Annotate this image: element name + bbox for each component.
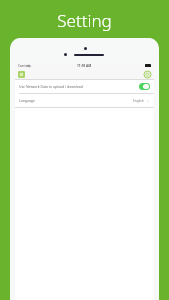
staticText: Use Network Data to upload / download <box>19 84 83 89</box>
button[interactable]: Account <box>144 71 151 78</box>
staticText: Setting <box>0 9 169 32</box>
button[interactable]: Menu <box>18 71 25 78</box>
staticText: Language <box>19 98 35 103</box>
staticText: 11:18 AM <box>77 64 92 68</box>
button[interactable]: Use Network Data to upload / download <box>15 80 154 93</box>
button[interactable]: Language <box>15 94 154 107</box>
button[interactable]: Toggle network data <box>139 83 150 90</box>
staticText: Carrier <box>18 64 29 68</box>
staticText: English <box>133 99 144 103</box>
button[interactable]: Menu <box>15 69 154 80</box>
